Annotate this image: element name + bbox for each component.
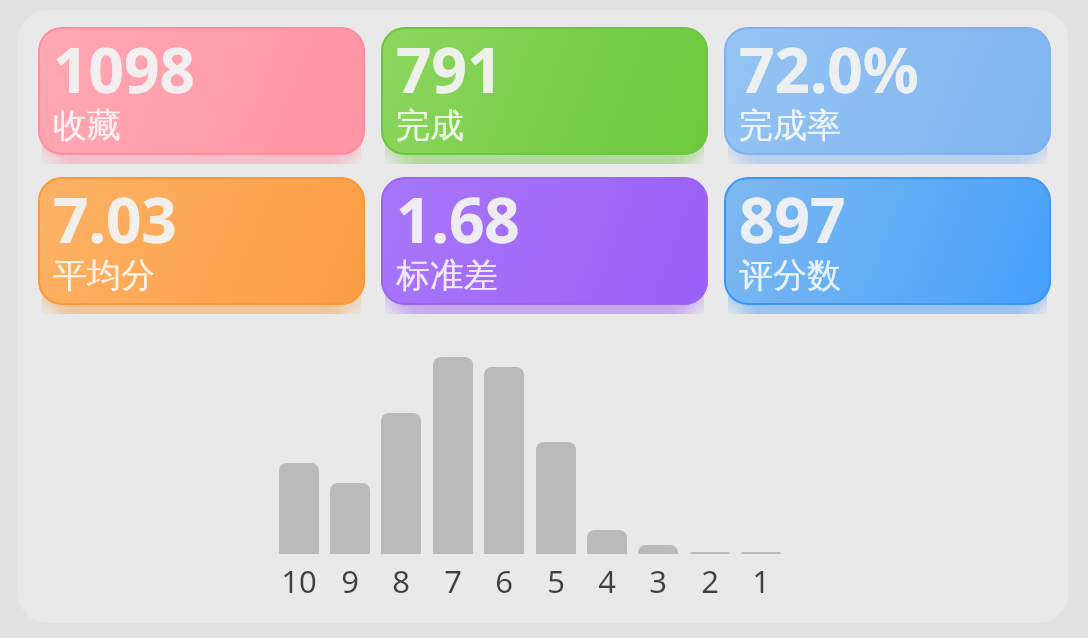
staticText: 4 — [598, 560, 616, 602]
staticText: 10 — [281, 560, 317, 602]
button[interactable]: 1098 — [38, 27, 365, 155]
staticText: 72.0% — [739, 27, 919, 111]
staticText: 平均分 — [53, 254, 155, 297]
staticText: 收藏 — [53, 104, 121, 147]
staticText: 1.68 — [396, 177, 520, 261]
staticText: 标准差 — [396, 254, 498, 297]
staticText: 评分数 — [739, 254, 841, 297]
staticText: 完成 — [396, 104, 464, 147]
staticText: 2 — [701, 560, 719, 602]
staticText: 7 — [444, 560, 462, 602]
staticText: 3 — [649, 560, 667, 602]
staticText: 8 — [392, 560, 410, 602]
staticText: 897 — [739, 177, 846, 261]
staticText: 791 — [396, 27, 503, 111]
button[interactable]: 1.68 — [381, 177, 708, 305]
staticText: 完成率 — [739, 104, 841, 147]
staticText: 7.03 — [53, 177, 177, 261]
staticText: 1098 — [53, 27, 195, 111]
button[interactable]: 7.03 — [38, 177, 365, 305]
button[interactable]: 897 — [724, 177, 1051, 305]
staticText: 5 — [547, 560, 565, 602]
staticText: 1 — [752, 560, 770, 602]
staticText: 9 — [341, 560, 359, 602]
button[interactable]: 791 — [381, 27, 708, 155]
staticText: 6 — [495, 560, 513, 602]
button[interactable]: 72.0% — [724, 27, 1051, 155]
